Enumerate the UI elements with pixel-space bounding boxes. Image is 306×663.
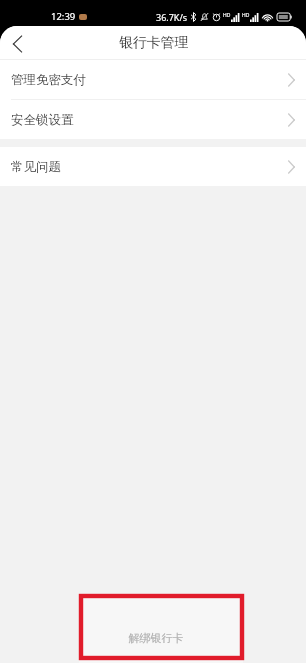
button[interactable]: 常见问题 xyxy=(0,147,306,186)
staticText: 管理免密支付 xyxy=(11,72,86,88)
staticText: 36.7K/s xyxy=(156,11,188,23)
button[interactable]: 安全锁设置 xyxy=(0,100,306,139)
button[interactable]: 管理免密支付 xyxy=(0,60,306,99)
button[interactable]: 解绑银行卡 xyxy=(79,594,243,663)
staticText: 安全锁设置 xyxy=(11,112,74,128)
staticText: 银行卡管理 xyxy=(119,34,188,51)
staticText: HD xyxy=(242,12,250,19)
staticText: 常见问题 xyxy=(11,159,61,175)
staticText: 12:39 xyxy=(51,10,76,23)
staticText: HD xyxy=(223,12,231,19)
button[interactable]: Back xyxy=(0,26,34,59)
staticText: 解绑银行卡 xyxy=(74,631,238,645)
